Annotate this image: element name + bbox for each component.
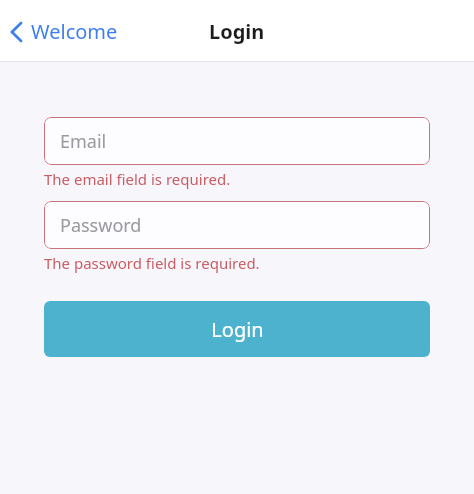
button[interactable]: Back [6,10,128,53]
staticText: Login [211,316,264,343]
staticText: Email [60,129,107,154]
staticText: Password [60,213,142,238]
button[interactable]: Login [44,301,430,357]
staticText: Login [209,18,265,45]
other: Back [10,21,23,43]
staticText: The email field is required. [44,169,231,189]
staticText: The password field is required. [44,253,260,273]
button[interactable]: Email [44,117,430,165]
staticText: Welcome [31,18,118,45]
button[interactable]: Password [44,201,430,249]
